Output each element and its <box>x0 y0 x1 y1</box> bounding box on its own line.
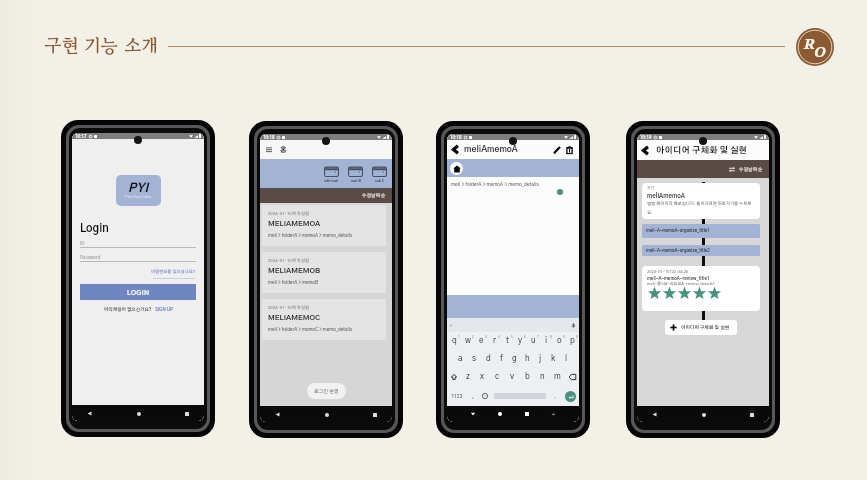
button[interactable]: r <box>488 332 501 350</box>
staticText: 1 <box>458 335 460 338</box>
button[interactable]: x <box>475 368 490 386</box>
button[interactable]: Menu <box>264 145 273 154</box>
button[interactable]: 비밀번호를 잊으셨나요? <box>151 270 196 279</box>
button[interactable]: Back <box>649 409 660 420</box>
button[interactable]: 2024-01-15에 작성됨 <box>262 205 386 246</box>
other: Hide keyboard <box>470 411 476 417</box>
button[interactable]: Home <box>133 408 144 419</box>
button[interactable]: g <box>508 350 521 368</box>
button[interactable]: LOGIN <box>80 284 196 300</box>
button[interactable]: ?123 <box>447 386 467 406</box>
staticText: d <box>486 355 491 363</box>
button[interactable]: y <box>514 332 527 350</box>
staticText: z <box>466 373 470 381</box>
staticText: s <box>472 355 476 363</box>
staticText: o <box>557 337 562 345</box>
staticText: 수정날짜 순 <box>362 193 386 198</box>
button[interactable]: Emoji <box>479 386 491 406</box>
button[interactable]: p <box>566 332 579 350</box>
staticText: 6 <box>524 335 526 338</box>
button[interactable]: Back <box>450 144 461 155</box>
button[interactable]: o <box>553 332 566 350</box>
staticText: 로그인 변경 <box>314 389 339 394</box>
button[interactable]: . <box>549 386 561 406</box>
button[interactable]: Enter <box>565 391 576 402</box>
staticText: x <box>480 373 485 381</box>
button[interactable]: h <box>521 350 534 368</box>
staticText: 8 <box>550 335 552 338</box>
button[interactable]: a <box>453 350 467 368</box>
staticText: , <box>472 393 475 399</box>
button[interactable]: Recents <box>369 409 380 420</box>
button[interactable]: Shift <box>447 368 461 386</box>
button[interactable]: meli-A-memoA-organize_title1 <box>642 224 760 238</box>
button[interactable]: SIGN UP <box>155 307 173 311</box>
button[interactable]: Recents <box>181 408 192 419</box>
button[interactable]: Edit <box>551 144 562 155</box>
staticText: meli-A-memoA-organize_title1 <box>646 229 710 233</box>
button[interactable]: b <box>520 368 535 386</box>
staticText: t <box>506 337 509 345</box>
button[interactable]: Back <box>84 408 95 419</box>
staticText: q <box>452 337 457 345</box>
staticText: 2024-01-15에 작성됨 <box>268 212 309 216</box>
button[interactable]: w <box>461 332 475 350</box>
other: Home <box>498 412 502 416</box>
button[interactable]: 2024-01-15에 작성됨 <box>262 252 386 293</box>
button[interactable]: meli-A-memoA-organize_title2 <box>642 245 760 256</box>
staticText: j <box>539 355 542 363</box>
button[interactable]: d <box>481 350 495 368</box>
staticText: ID <box>80 241 85 246</box>
button[interactable]: f <box>495 350 508 368</box>
staticText: f <box>500 355 503 363</box>
button[interactable]: 2024-01-15T22:34:26 <box>642 266 760 311</box>
button[interactable]: 초안 <box>642 183 760 219</box>
button[interactable]: , <box>467 386 479 406</box>
staticText: i <box>545 337 548 345</box>
button[interactable]: z <box>461 368 475 386</box>
staticText: m <box>554 373 561 381</box>
button[interactable]: 아이디어 구체화 및 실현 <box>665 320 737 335</box>
staticText: 수정날짜 순 <box>739 167 763 172</box>
button[interactable]: Back <box>272 409 283 420</box>
staticText: y <box>518 337 523 345</box>
button[interactable]: Back <box>640 145 651 156</box>
button[interactable]: s <box>467 350 481 368</box>
staticText: 아이디어 구체화 및 실현 <box>681 325 730 330</box>
staticText: meli-A-memoA-organize_title2 <box>646 249 710 253</box>
staticText: 아직계정이 없으신가요? <box>104 307 152 311</box>
button[interactable]: Home folder <box>450 162 463 175</box>
button[interactable]: t <box>501 332 514 350</box>
button[interactable]: edit rush <box>324 166 339 182</box>
button[interactable]: i <box>540 332 553 350</box>
button[interactable]: 2024-01-15에 작성됨 <box>262 299 386 340</box>
button[interactable]: e <box>475 332 488 350</box>
button[interactable]: k <box>547 350 560 368</box>
staticText: root B <box>351 179 361 182</box>
button[interactable]: sub C <box>372 166 387 182</box>
button[interactable]: root B <box>348 166 363 182</box>
button[interactable]: Logo <box>796 28 834 66</box>
button[interactable]: u <box>527 332 540 350</box>
button[interactable]: v <box>505 368 520 386</box>
staticText: O <box>814 41 826 61</box>
button[interactable]: Home <box>321 409 332 420</box>
button[interactable]: Delete <box>564 144 575 155</box>
button[interactable]: Recents <box>746 409 757 420</box>
staticText: u <box>531 337 536 345</box>
button[interactable]: j <box>534 350 547 368</box>
staticText: n <box>540 373 545 381</box>
button[interactable]: m <box>550 368 565 386</box>
button[interactable]: c <box>490 368 505 386</box>
button[interactable]: n <box>535 368 550 386</box>
button[interactable]: Backspace <box>565 368 579 386</box>
staticText: sub C <box>375 179 385 182</box>
staticText: meli > folderA > memoC > memo_details <box>268 327 353 332</box>
button[interactable]: Sort <box>727 165 736 174</box>
button[interactable]: q <box>447 332 461 350</box>
button[interactable]: 로그인 변경 <box>307 383 346 399</box>
button[interactable]: Home <box>698 409 709 420</box>
button[interactable]: l <box>560 350 573 368</box>
